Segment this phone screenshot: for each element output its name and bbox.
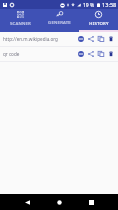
button[interactable]: http://en.m.wikipedia.org: [0, 32, 118, 46]
button[interactable]: GENERATE: [40, 9, 79, 32]
staticText: SCANNER: [10, 20, 31, 26]
button[interactable]: Open link: [76, 49, 86, 59]
staticText: HISTORY: [89, 20, 109, 26]
button[interactable]: Back: [19, 194, 35, 210]
button[interactable]: Delete: [106, 34, 116, 44]
button[interactable]: Copy: [96, 34, 106, 44]
staticText: qr code: [3, 51, 76, 57]
button[interactable]: Share: [86, 34, 96, 44]
staticText: 13:58: [102, 1, 117, 9]
staticText: 19 %: [83, 2, 95, 9]
button[interactable]: Recent apps: [83, 194, 99, 210]
staticText: GENERATE: [48, 19, 71, 25]
button[interactable]: SCANNER: [0, 9, 40, 32]
staticText: http://en.m.wikipedia.org: [3, 36, 76, 42]
button[interactable]: Home: [51, 194, 67, 210]
button[interactable]: Share: [86, 49, 96, 59]
button[interactable]: qr code: [0, 47, 118, 61]
button[interactable]: HISTORY: [79, 9, 118, 32]
button[interactable]: Open link: [76, 34, 86, 44]
button[interactable]: Delete: [106, 49, 116, 59]
button[interactable]: Copy: [96, 49, 106, 59]
